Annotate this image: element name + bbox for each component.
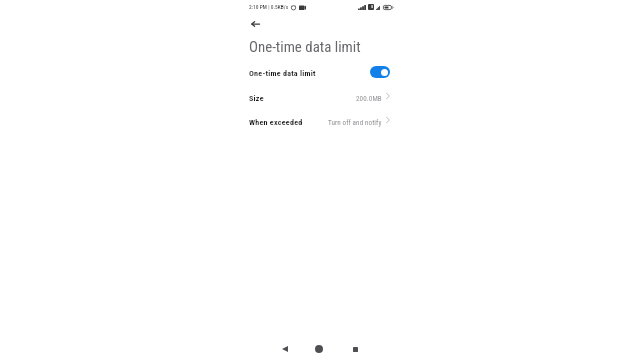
staticText: Size: [249, 93, 264, 102]
button[interactable]: Size: [246, 85, 394, 109]
button[interactable]: Back: [246, 15, 264, 33]
staticText: Turn off and notify: [328, 118, 382, 126]
button[interactable]: Recents: [346, 340, 364, 358]
staticText: When exceeded: [249, 117, 303, 126]
button[interactable]: One-time data limit: [246, 61, 394, 84]
button[interactable]: Home: [310, 340, 328, 358]
staticText: 200.0MB: [356, 94, 382, 102]
staticText: 2:10 PM | 0.5KB/s: [249, 4, 289, 10]
staticText: One-time data limit: [249, 68, 316, 77]
button[interactable]: One-time data limit, on: [370, 66, 390, 78]
staticText: One-time data limit: [249, 38, 361, 55]
button[interactable]: Back: [276, 340, 294, 358]
button[interactable]: When exceeded: [246, 109, 394, 133]
